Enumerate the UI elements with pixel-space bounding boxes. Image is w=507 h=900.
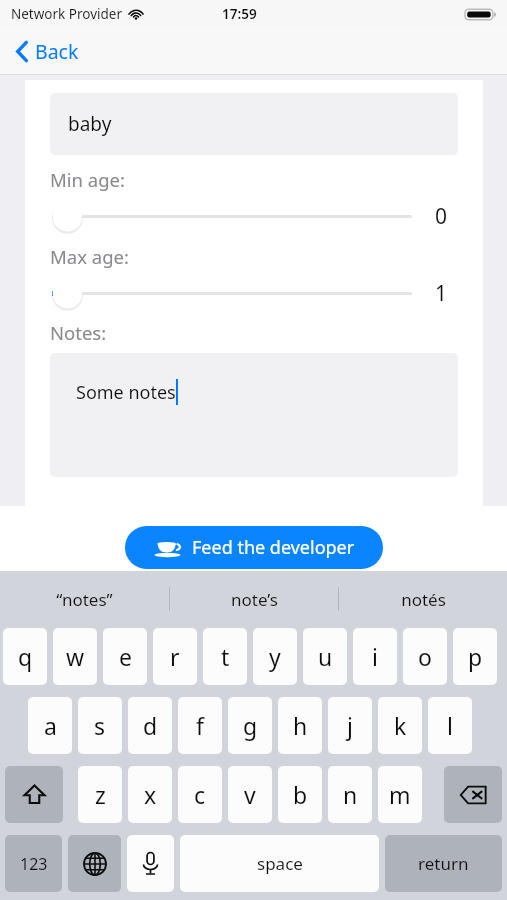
button[interactable]: Dictate: [127, 835, 174, 892]
button[interactable]: o: [403, 628, 447, 685]
staticText: 17:59: [222, 5, 257, 23]
button[interactable]: Backspace: [444, 766, 502, 823]
button[interactable]: Feed the developer: [125, 526, 383, 569]
staticText: u: [318, 641, 333, 672]
staticText: r: [170, 641, 180, 672]
button[interactable]: f: [178, 697, 222, 754]
button[interactable]: Age slider thumb: [51, 200, 84, 233]
button[interactable]: Some notes: [50, 353, 458, 477]
button[interactable]: k: [378, 697, 422, 754]
staticText: v: [244, 779, 256, 810]
button[interactable]: notés: [339, 571, 507, 627]
button[interactable]: a: [28, 697, 72, 754]
staticText: “notes”: [56, 588, 113, 611]
button[interactable]: return: [385, 835, 502, 892]
staticText: l: [447, 710, 453, 741]
staticText: g: [243, 710, 258, 741]
staticText: 123: [20, 853, 48, 875]
button[interactable]: Shift: [5, 766, 63, 823]
staticText: e: [119, 641, 132, 672]
staticText: note’s: [231, 588, 278, 611]
staticText: p: [468, 641, 483, 672]
staticText: q: [18, 641, 33, 672]
button[interactable]: q: [3, 628, 47, 685]
staticText: s: [94, 710, 106, 741]
button[interactable]: y: [253, 628, 297, 685]
button[interactable]: n: [328, 766, 372, 823]
staticText: c: [194, 779, 206, 810]
staticText: x: [144, 779, 157, 810]
staticText: d: [143, 710, 158, 741]
button[interactable]: note’s: [170, 571, 338, 627]
button[interactable]: Age slider thumb: [51, 277, 84, 310]
button[interactable]: v: [228, 766, 272, 823]
staticText: j: [347, 710, 353, 741]
staticText: Network Provider: [11, 5, 123, 23]
staticText: w: [66, 641, 85, 672]
button[interactable]: Back: [8, 31, 87, 72]
staticText: baby: [68, 111, 112, 137]
staticText: notés: [401, 588, 446, 611]
staticText: 1: [435, 279, 448, 308]
staticText: i: [372, 641, 378, 672]
staticText: f: [196, 710, 204, 741]
staticText: Back: [35, 38, 79, 65]
button[interactable]: space: [180, 835, 379, 892]
button[interactable]: r: [153, 628, 197, 685]
button[interactable]: s: [78, 697, 122, 754]
staticText: space: [257, 852, 303, 875]
button[interactable]: c: [178, 766, 222, 823]
button[interactable]: d: [128, 697, 172, 754]
staticText: Max age:: [50, 244, 129, 269]
button[interactable]: g: [228, 697, 272, 754]
staticText: y: [269, 641, 281, 672]
button[interactable]: baby: [50, 93, 458, 155]
button[interactable]: b: [278, 766, 322, 823]
button[interactable]: “notes”: [0, 571, 169, 627]
staticText: a: [44, 710, 57, 741]
staticText: b: [293, 779, 308, 810]
staticText: m: [389, 779, 411, 810]
staticText: Min age:: [50, 167, 125, 192]
button[interactable]: u: [303, 628, 347, 685]
staticText: k: [394, 710, 407, 741]
staticText: z: [95, 779, 106, 810]
button[interactable]: t: [203, 628, 247, 685]
button[interactable]: l: [428, 697, 472, 754]
button[interactable]: j: [328, 697, 372, 754]
staticText: n: [343, 779, 358, 810]
button[interactable]: z: [78, 766, 122, 823]
staticText: return: [418, 852, 469, 875]
button[interactable]: h: [278, 697, 322, 754]
staticText: Some notes: [76, 380, 176, 405]
staticText: 0: [435, 202, 448, 231]
button[interactable]: i: [353, 628, 397, 685]
button[interactable]: w: [53, 628, 97, 685]
staticText: Feed the developer: [192, 535, 355, 560]
staticText: Notes:: [50, 320, 107, 345]
button[interactable]: m: [378, 766, 422, 823]
button[interactable]: 123: [5, 835, 62, 892]
staticText: t: [221, 641, 230, 672]
button[interactable]: Switch keyboard: [68, 835, 121, 892]
button[interactable]: p: [453, 628, 497, 685]
button[interactable]: x: [128, 766, 172, 823]
button[interactable]: e: [103, 628, 147, 685]
staticText: o: [418, 641, 432, 672]
staticText: h: [293, 710, 308, 741]
